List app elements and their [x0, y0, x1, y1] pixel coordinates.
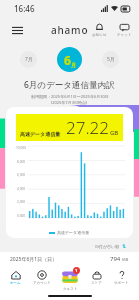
staticText: 10,000: [16, 146, 26, 150]
staticText: 月: [71, 62, 76, 68]
button[interactable]: アカウント: [31, 270, 53, 285]
staticText: アカウント: [33, 281, 51, 285]
staticText: 5月: [107, 56, 115, 63]
staticText: 高速データ通信量: [20, 131, 61, 137]
staticText: 高速データ通信量: [57, 230, 90, 235]
staticText: GB: [110, 129, 119, 137]
staticText: ⇅: [122, 243, 127, 249]
staticText: 794: [110, 255, 121, 263]
staticText: 利用期間：2025年6月1日〜2025年6月30日: [31, 94, 109, 99]
staticText: 7月: [25, 56, 33, 63]
staticText: 6: [64, 52, 71, 68]
button[interactable]: Menu: [6, 19, 28, 41]
button[interactable]: Notifications: [90, 22, 109, 38]
staticText: サポート: [114, 281, 129, 285]
staticText: ストア: [91, 281, 102, 285]
button[interactable]: 7月: [20, 51, 37, 68]
staticText: 2025年6月1日（日）: [10, 256, 58, 263]
button[interactable]: 日付が古い順: [93, 241, 129, 251]
staticText: 4,000: [17, 187, 26, 191]
button[interactable]: サポート: [112, 270, 131, 285]
staticText: 6,000: [17, 173, 26, 177]
staticText: ahamo: [51, 23, 89, 37]
staticText: 16:46: [14, 3, 35, 14]
staticText: 27.22: [66, 116, 109, 139]
button[interactable]: ストア: [89, 270, 104, 285]
staticText: チャット: [117, 33, 132, 37]
button[interactable]: クエスト: [60, 267, 80, 291]
button[interactable]: ホーム: [8, 270, 23, 285]
button[interactable]: Chat: [115, 22, 134, 38]
staticText: 0.000: [17, 214, 26, 218]
staticText: (2025年7月3日時点): [51, 100, 88, 105]
staticText: 日付が古い順: [95, 244, 120, 249]
staticText: 1: [75, 268, 78, 273]
staticText: 2,000: [17, 200, 26, 204]
staticText: クエスト: [63, 287, 78, 291]
button[interactable]: 5月: [102, 51, 119, 68]
staticText: 8,000: [17, 160, 26, 164]
staticText: お知らせ: [92, 33, 107, 37]
staticText: ホーム: [10, 281, 21, 285]
staticText: MB: [121, 257, 129, 262]
button[interactable]: 6: [57, 47, 82, 72]
staticText: 6月のデータ通信量内訳: [24, 79, 115, 91]
